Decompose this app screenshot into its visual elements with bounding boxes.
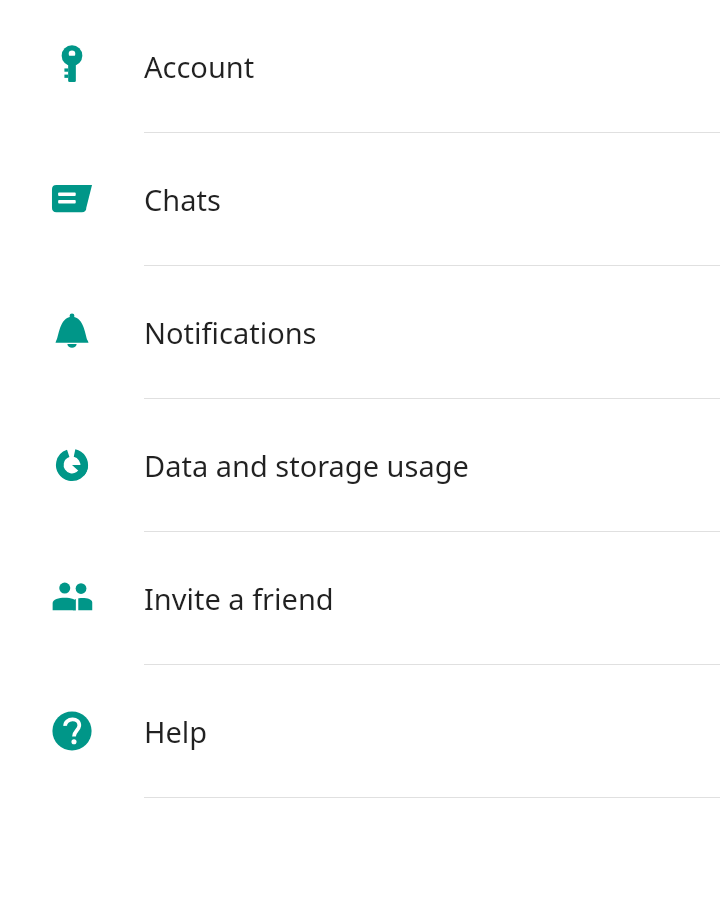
other: Data and storage usage xyxy=(50,443,94,487)
staticText: Notifications xyxy=(144,313,317,352)
button[interactable]: Data and storage usage xyxy=(0,399,720,532)
button[interactable]: Invite a friend xyxy=(0,532,720,665)
other: Account xyxy=(50,44,94,88)
other: Chats xyxy=(50,177,94,221)
other: Help xyxy=(50,709,94,753)
staticText: Chats xyxy=(144,180,221,219)
other: Invite a friend xyxy=(50,576,94,620)
staticText: Data and storage usage xyxy=(144,446,469,485)
button[interactable]: Account xyxy=(0,0,720,133)
staticText: Account xyxy=(144,47,255,86)
button[interactable]: Notifications xyxy=(0,266,720,399)
button[interactable]: Chats xyxy=(0,133,720,266)
staticText: Invite a friend xyxy=(144,579,334,618)
staticText: Help xyxy=(144,712,208,751)
other: Notifications xyxy=(50,310,94,354)
button[interactable]: Help xyxy=(0,665,720,798)
